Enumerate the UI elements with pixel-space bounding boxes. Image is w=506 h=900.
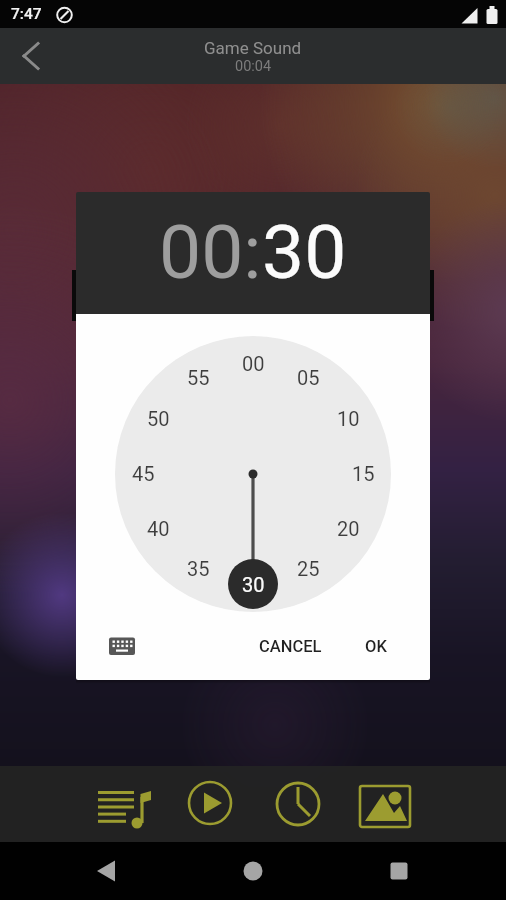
button[interactable] [182,775,238,831]
staticText: 10 [337,407,360,430]
button[interactable] [357,776,413,832]
button[interactable] [231,849,275,893]
staticText: 20 [337,517,360,540]
staticText: CANCEL [259,637,322,656]
staticText: 45 [132,462,155,485]
staticText: 40 [147,517,170,540]
staticText: 25 [297,557,320,580]
staticText: 35 [187,557,210,580]
staticText: 05 [297,366,320,389]
staticText: 30 [242,573,265,596]
staticText: Game Sound [204,38,302,58]
staticText: 15 [352,462,375,485]
button[interactable] [86,849,130,893]
staticText: 30 [262,208,347,296]
button[interactable]: OK [346,624,406,668]
staticText: OK [365,637,387,656]
staticText: 00 [242,352,265,375]
button[interactable] [106,630,138,662]
staticText: 00: [159,208,262,296]
staticText: 55 [187,366,210,389]
staticText: 7:47 [11,5,42,23]
button[interactable]: CANCEL [235,624,345,668]
staticText: 50 [147,407,170,430]
button[interactable] [93,773,149,829]
button[interactable] [270,776,326,832]
staticText: 00:04 [235,58,272,75]
button[interactable] [8,42,48,70]
button[interactable] [377,849,421,893]
